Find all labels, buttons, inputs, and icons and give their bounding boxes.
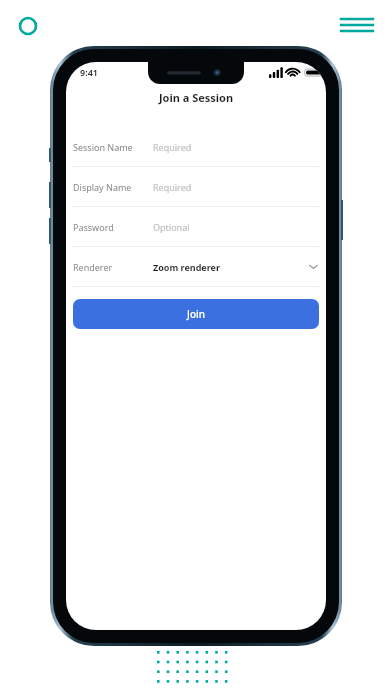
button[interactable]: Home logo [16,14,40,38]
button[interactable]: Display Name [66,167,326,206]
staticText: Required [153,181,319,193]
staticText: Required [153,141,319,153]
staticText: Display Name [73,181,153,193]
staticText: Join a Session [66,90,326,105]
staticText: 9:41 [80,66,98,78]
staticText: Zoom renderer [153,261,308,273]
button[interactable]: Menu [338,12,376,38]
staticText: Renderer [73,261,153,273]
staticText: Password [73,221,153,233]
button[interactable]: Join [73,299,319,329]
button[interactable]: Password [66,207,326,246]
staticText: Join [187,307,205,321]
button[interactable]: Session Name [66,127,326,166]
staticText: Optional [153,221,319,233]
button[interactable]: Renderer [66,247,326,286]
staticText: Session Name [73,141,153,153]
